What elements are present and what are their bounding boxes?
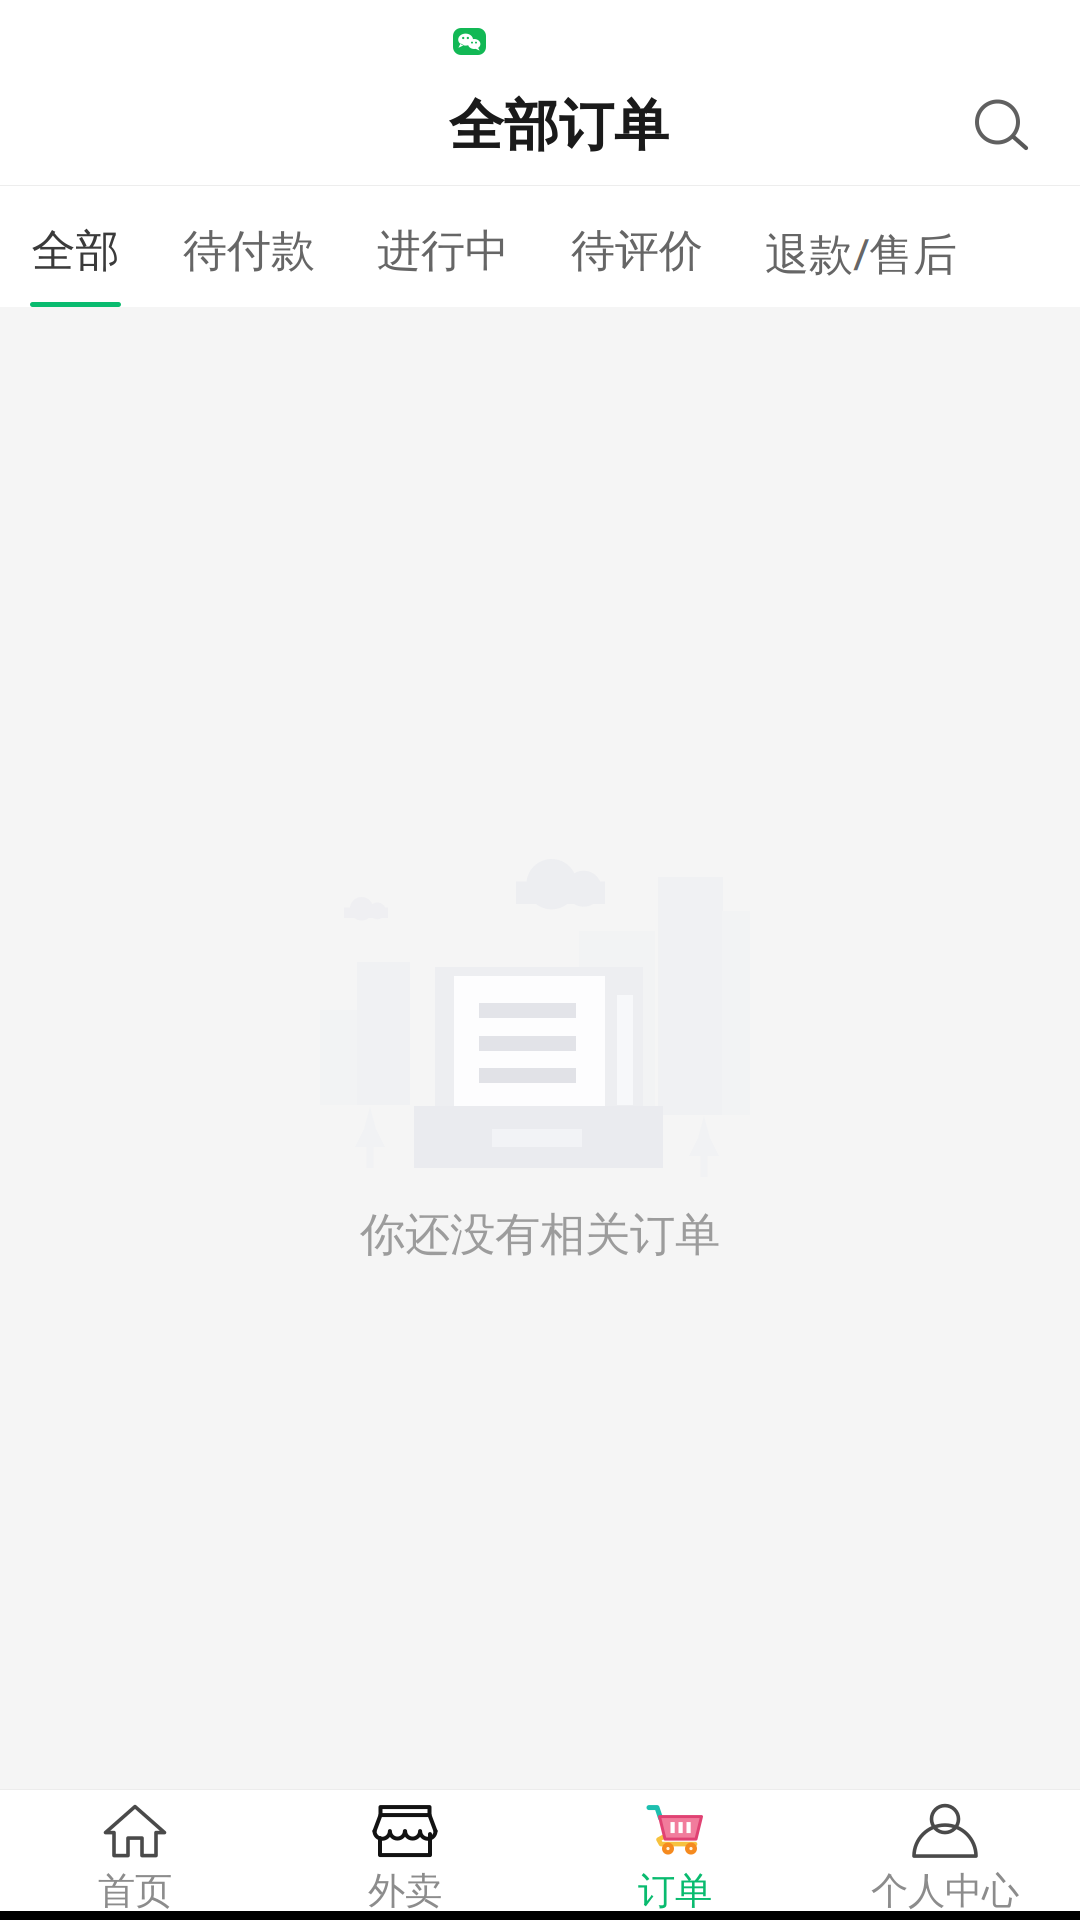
staticText: 退款/售后 — [765, 224, 957, 282]
button[interactable]: 外卖 — [270, 1789, 540, 1911]
staticText: 外卖 — [368, 1868, 442, 1914]
staticText: 订单 — [638, 1868, 712, 1914]
button[interactable]: 退款/售后 — [734, 186, 988, 307]
staticText: 全部 — [31, 224, 119, 278]
button[interactable]: 首页 — [0, 1789, 270, 1911]
button[interactable]: 进行中 — [346, 186, 540, 307]
button[interactable]: 订单 — [540, 1789, 810, 1911]
staticText: 全部订单 — [449, 92, 669, 159]
staticText: 首页 — [98, 1868, 172, 1914]
button[interactable]: 待评价 — [540, 186, 734, 307]
button[interactable]: 待付款 — [152, 186, 346, 307]
staticText: 个人中心 — [871, 1868, 1019, 1914]
button[interactable]: 个人中心 — [810, 1789, 1080, 1911]
staticText: 你还没有相关订单 — [360, 1207, 720, 1263]
button[interactable]: 全部 — [0, 186, 152, 307]
button[interactable]: 搜索 — [975, 101, 1031, 157]
staticText: 进行中 — [377, 224, 509, 278]
staticText: 待付款 — [183, 224, 315, 278]
staticText: 待评价 — [571, 224, 703, 278]
